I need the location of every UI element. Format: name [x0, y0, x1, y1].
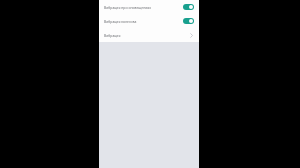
button[interactable]: Переключатель включен [183, 4, 194, 10]
button[interactable]: Вибрация [99, 28, 199, 42]
button[interactable]: Вибрация при оповещениях [99, 0, 199, 14]
staticText: Вибрация [104, 33, 185, 38]
button[interactable]: Вибрация колесика [99, 14, 199, 28]
button[interactable]: Открыть [188, 31, 194, 39]
staticText: Вибрация при оповещениях [104, 5, 180, 10]
button[interactable]: Переключатель включен [183, 18, 194, 24]
staticText: Вибрация колесика [104, 19, 180, 24]
